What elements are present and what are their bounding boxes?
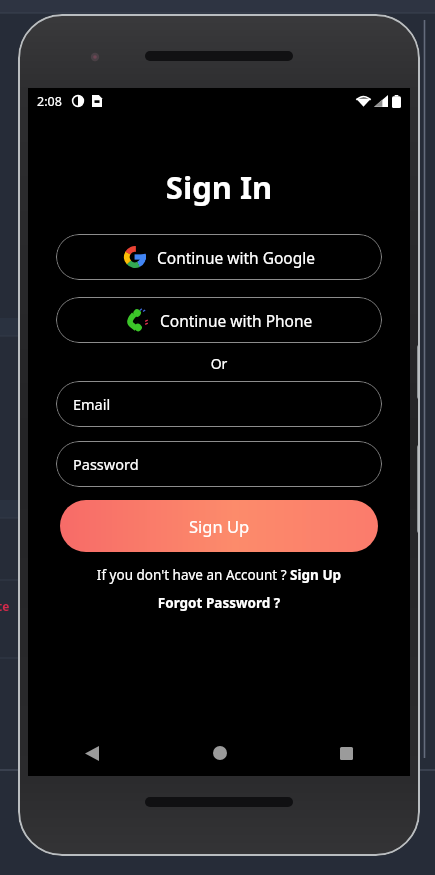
staticText: Forgot Password ? xyxy=(28,594,410,612)
staticText: If you don't have an Account ? Sign Up xyxy=(40,566,398,584)
button[interactable]: Email xyxy=(56,381,382,427)
staticText: Or xyxy=(28,354,410,373)
button[interactable]: Sign Up xyxy=(60,500,378,552)
staticText: 2:08 xyxy=(37,93,62,110)
staticText: Email xyxy=(73,394,111,414)
staticText: te xyxy=(0,598,10,614)
staticText: Password xyxy=(73,454,139,474)
button[interactable]: Password xyxy=(56,441,382,487)
staticText: Sign In xyxy=(28,166,410,208)
button[interactable]: Back xyxy=(28,730,156,776)
button[interactable]: Continue with Google xyxy=(56,234,382,280)
other: Phone xyxy=(125,308,149,332)
button[interactable]: If you don't have an Account ? Sign Up xyxy=(28,564,410,586)
staticText: Continue with Phone xyxy=(160,310,313,331)
button[interactable]: Phone xyxy=(56,297,382,343)
button[interactable]: Recent apps xyxy=(283,730,410,776)
staticText: Continue with Google xyxy=(157,247,315,268)
button[interactable]: Forgot Password ? xyxy=(28,592,410,614)
staticText: Sign Up xyxy=(189,515,250,537)
button[interactable]: Home xyxy=(156,730,283,776)
